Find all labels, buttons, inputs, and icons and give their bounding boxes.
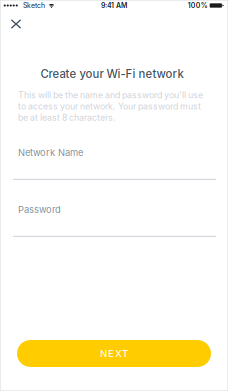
staticText: Network Name <box>18 147 83 158</box>
staticText: NEXT <box>100 348 128 359</box>
staticText: Create your Wi-Fi network <box>40 67 183 81</box>
staticText: 9:41 AM <box>101 1 127 10</box>
staticText: This will be the name and password you'l… <box>18 90 203 123</box>
button[interactable]: NEXT <box>17 340 211 367</box>
button[interactable]: Close <box>3 11 29 37</box>
staticText: Sketch <box>23 1 45 10</box>
staticText: 100% <box>188 1 208 10</box>
staticText: Password <box>18 204 61 215</box>
